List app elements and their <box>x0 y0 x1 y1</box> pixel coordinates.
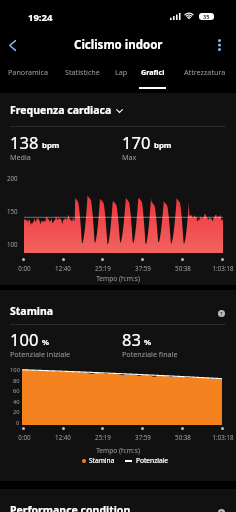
staticText: 12:40 <box>55 433 71 441</box>
staticText: Performance condition <box>10 503 131 512</box>
button[interactable]: Informazioni <box>212 304 231 323</box>
staticText: 20 <box>13 408 20 416</box>
staticText: 1:03:18 <box>212 264 234 272</box>
staticText: 0:00 <box>18 433 31 441</box>
staticText: 0 <box>16 419 20 427</box>
staticText: Potenziale iniziale <box>10 349 71 359</box>
staticText: 40 <box>13 398 20 406</box>
staticText: 60 <box>13 387 20 395</box>
button[interactable]: Grafici <box>135 62 170 90</box>
staticText: Lap <box>115 67 128 77</box>
button[interactable]: Informazioni <box>212 503 231 512</box>
staticText: ? <box>220 509 223 512</box>
staticText: Panoramica <box>8 67 49 77</box>
staticText: 100 <box>7 240 18 248</box>
staticText: Ciclismo indoor <box>74 37 163 53</box>
staticText: 25:19 <box>95 264 111 272</box>
button[interactable]: Lap <box>109 62 133 90</box>
staticText: 19:24 <box>28 11 53 24</box>
staticText: 35 <box>203 13 210 20</box>
staticText: 138 <box>10 131 39 153</box>
staticText: 170 <box>122 131 151 153</box>
staticText: bpm <box>154 140 172 151</box>
staticText: Max <box>122 152 137 162</box>
staticText: 25:19 <box>95 433 111 441</box>
button[interactable]: Indietro <box>0 28 24 62</box>
button[interactable]: Frequenza cardiaca <box>10 103 123 117</box>
staticText: 37:59 <box>135 264 151 272</box>
staticText: bpm <box>42 140 60 151</box>
staticText: % <box>144 337 152 348</box>
staticText: Media <box>10 152 31 162</box>
staticText: 1:03:18 <box>212 433 234 441</box>
button[interactable]: Attrezzatura <box>176 62 234 90</box>
staticText: Attrezzatura <box>184 67 226 77</box>
staticText: 37:59 <box>135 433 151 441</box>
staticText: 50:38 <box>175 264 191 272</box>
staticText: 150 <box>7 207 18 215</box>
staticText: Statistiche <box>65 67 100 77</box>
staticText: Tempo (h:m:s) <box>0 274 236 283</box>
staticText: ? <box>220 310 223 317</box>
staticText: Stamina <box>10 304 54 318</box>
staticText: 100 <box>10 366 20 374</box>
button[interactable]: Statistiche <box>58 62 107 90</box>
staticText: Potenziale finale <box>122 349 178 359</box>
staticText: 80 <box>13 377 20 385</box>
staticText: Potenziale <box>136 456 169 465</box>
button[interactable]: Panoramica <box>0 62 57 90</box>
staticText: 200 <box>7 174 18 182</box>
staticText: 100 <box>10 328 39 350</box>
staticText: % <box>42 337 50 348</box>
staticText: Tempo (h:m:s) <box>0 446 236 455</box>
button[interactable]: Altre opzioni <box>207 28 231 62</box>
staticText: Stamina <box>89 456 115 465</box>
staticText: Grafici <box>141 67 165 77</box>
staticText: 0:00 <box>18 264 31 272</box>
staticText: Frequenza cardiaca <box>10 103 112 117</box>
staticText: 12:40 <box>55 264 71 272</box>
staticText: 83 <box>122 328 141 350</box>
staticText: 50:38 <box>175 433 191 441</box>
